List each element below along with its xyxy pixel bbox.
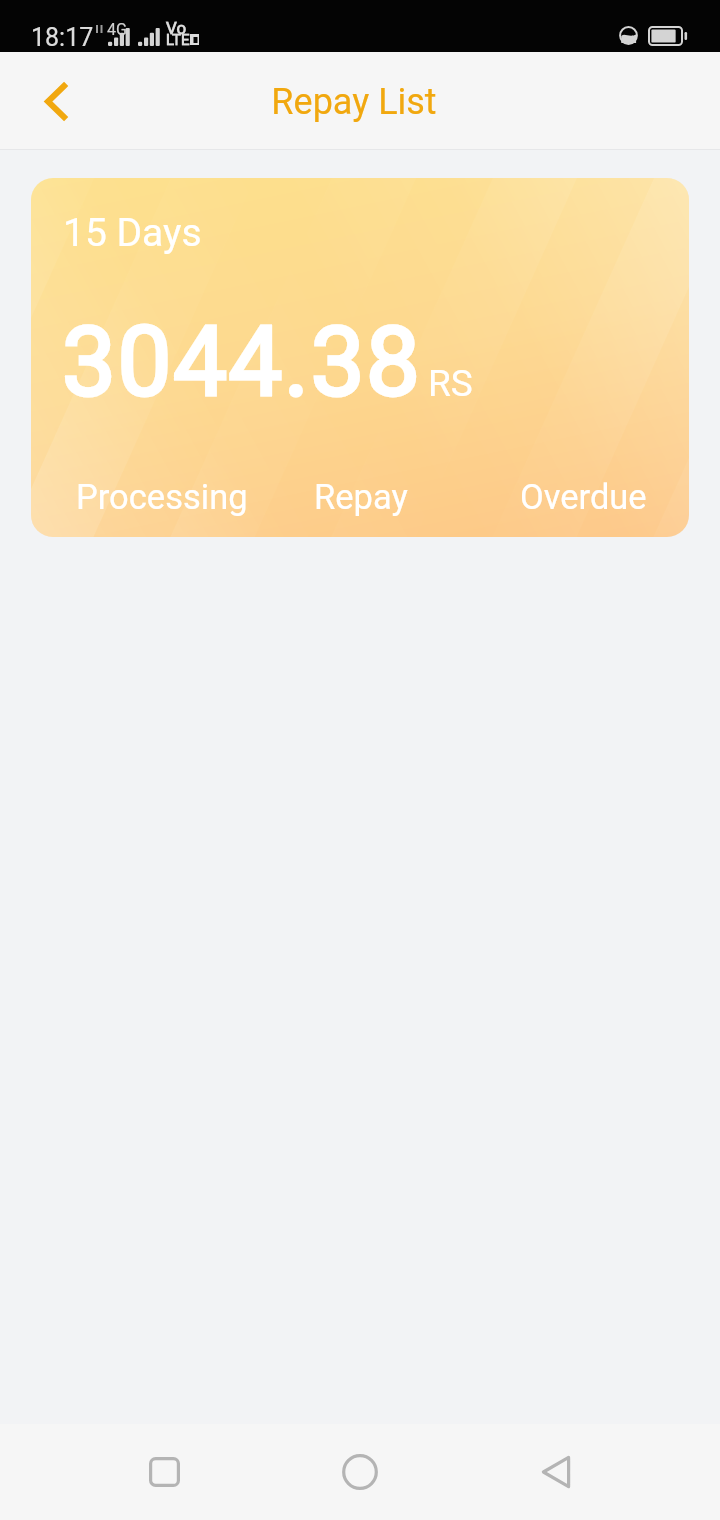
staticText: 3044.38	[62, 306, 422, 419]
button[interactable]: Processing	[76, 469, 248, 525]
staticText: 4G	[107, 20, 127, 39]
button[interactable]: Overdue	[520, 469, 647, 525]
button[interactable]: Recents	[116, 1432, 212, 1512]
staticText: 15 Days	[63, 210, 202, 256]
staticText: Overdue	[520, 477, 647, 517]
button[interactable]: Repay	[314, 469, 408, 525]
button[interactable]: Back	[10, 62, 102, 140]
staticText: Processing	[76, 477, 248, 517]
staticText: LTE	[166, 31, 190, 49]
button[interactable]: Home	[312, 1432, 408, 1512]
button[interactable]: 15 Days	[31, 178, 689, 537]
staticText: RS	[428, 362, 473, 405]
button[interactable]: Back	[508, 1432, 604, 1512]
staticText: Vo	[166, 18, 187, 38]
staticText: Repay List	[0, 81, 714, 123]
staticText: Repay	[314, 477, 408, 517]
staticText: 18:17	[31, 23, 94, 52]
